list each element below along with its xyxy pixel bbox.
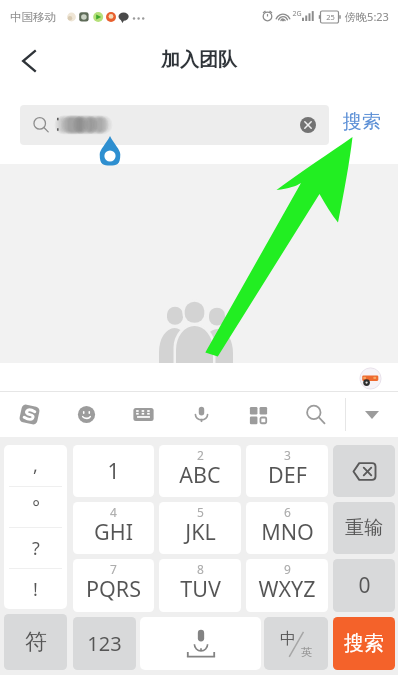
button[interactable]: 搜索	[336, 102, 388, 142]
button[interactable]: 5	[159, 502, 241, 554]
staticText: !	[33, 577, 38, 602]
staticText: 中国移动	[10, 10, 56, 24]
button[interactable]: 0	[333, 559, 395, 612]
staticText: 傍晚5:23	[345, 9, 389, 24]
staticText: 符	[25, 628, 47, 656]
staticText: DEF	[268, 460, 307, 489]
staticText: ABC	[179, 460, 221, 489]
staticText: 搜索	[343, 110, 381, 134]
button[interactable]: 符	[4, 614, 67, 670]
staticText: TUV	[180, 574, 221, 603]
staticText: 搜索	[344, 631, 384, 656]
button[interactable]: 7	[73, 559, 154, 612]
staticText: °	[32, 495, 40, 520]
staticText: JKL	[185, 517, 216, 546]
button[interactable]: Emoji	[65, 392, 107, 437]
staticText: 1	[107, 457, 120, 486]
staticText: 0	[358, 571, 371, 600]
button[interactable]: Chinese English toggle	[264, 617, 328, 670]
staticText: 8	[197, 561, 204, 577]
staticText: 7	[110, 561, 117, 577]
staticText: 加入团队	[161, 48, 237, 72]
button[interactable]: 重输	[333, 502, 395, 554]
button[interactable]: Clear text	[300, 117, 316, 133]
button[interactable]: Backspace	[333, 445, 395, 497]
staticText: 123	[87, 630, 122, 657]
button[interactable]: Voice input	[180, 392, 222, 437]
button[interactable]: 123	[73, 617, 136, 670]
staticText: 9	[284, 561, 291, 577]
staticText: 5	[197, 504, 204, 520]
staticText: 2G	[292, 9, 302, 19]
staticText: 重输	[345, 516, 383, 540]
button[interactable]: Search	[294, 392, 336, 437]
staticText: ,	[33, 453, 38, 478]
button[interactable]: 1	[73, 445, 154, 497]
staticText: MNO	[261, 517, 314, 546]
button[interactable]: 2	[159, 445, 241, 497]
button[interactable]: 6	[246, 502, 328, 554]
staticText: 英	[301, 645, 312, 659]
button[interactable]: Back	[12, 44, 46, 78]
staticText: 2	[197, 447, 204, 463]
staticText: 6	[284, 504, 291, 520]
button[interactable]: Space	[140, 617, 261, 670]
staticText: 中	[280, 629, 296, 649]
button[interactable]: Sogou input	[8, 392, 50, 437]
staticText: 3	[284, 447, 291, 463]
button[interactable]: 8	[159, 559, 241, 612]
button[interactable]: Clear text	[20, 105, 329, 145]
button[interactable]: 搜索	[333, 617, 395, 670]
button[interactable]: Hide keyboard	[351, 392, 393, 437]
button[interactable]: 9	[246, 559, 328, 612]
button[interactable]: 3	[246, 445, 328, 497]
button[interactable]: ,	[4, 445, 67, 609]
staticText: WXYZ	[258, 574, 316, 603]
staticText: 25	[326, 12, 335, 22]
button[interactable]: 4	[73, 502, 154, 554]
staticText: PQRS	[86, 574, 141, 603]
button[interactable]: Keyboard layout	[122, 392, 164, 437]
staticText: 4	[110, 504, 117, 520]
button[interactable]: More tools	[237, 392, 279, 437]
staticText: ?	[32, 536, 40, 561]
staticText: GHI	[94, 517, 133, 546]
